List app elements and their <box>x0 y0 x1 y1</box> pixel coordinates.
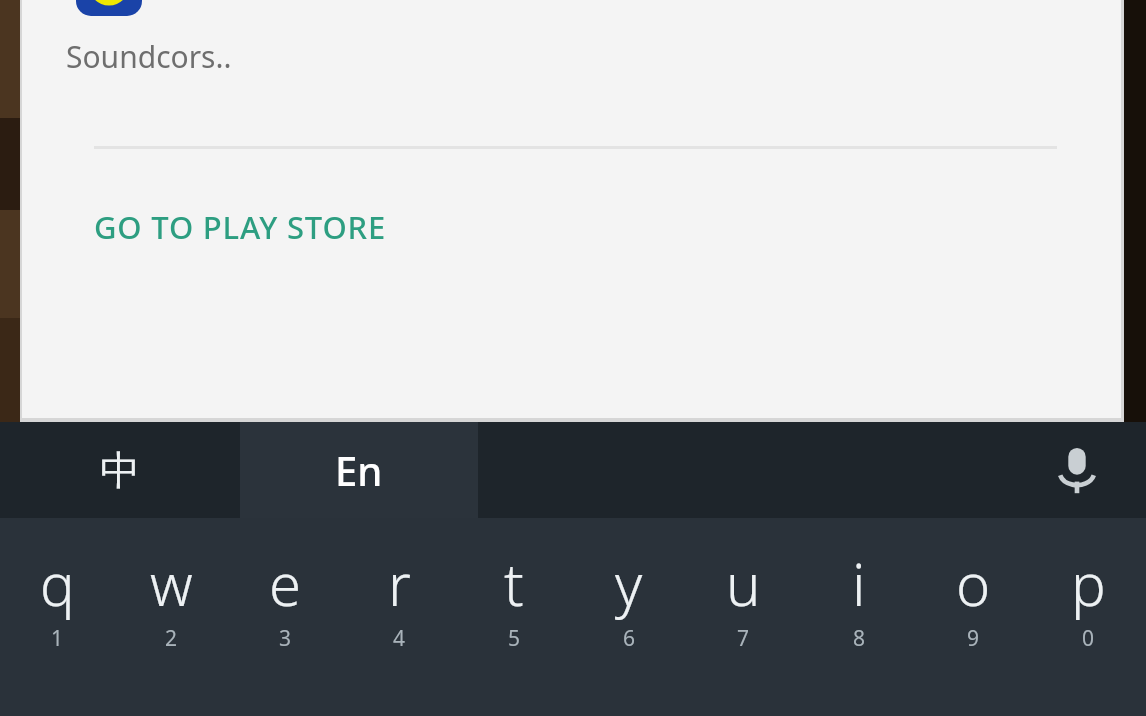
staticText: 5 <box>508 624 521 653</box>
staticText: 1 <box>51 624 64 653</box>
button[interactable]: Voice input <box>1048 441 1106 499</box>
staticText: 4 <box>393 624 406 653</box>
staticText: p <box>1071 544 1106 623</box>
staticText: w <box>150 544 193 623</box>
staticText: 2 <box>165 624 178 653</box>
staticText: En <box>335 443 383 497</box>
staticText: y <box>615 544 643 623</box>
button[interactable]: o <box>916 518 1031 716</box>
button[interactable]: GO TO PLAY STORE <box>78 192 402 262</box>
staticText: GO TO PLAY STORE <box>94 206 386 248</box>
button[interactable]: y <box>571 518 686 716</box>
staticText: 8 <box>853 624 866 653</box>
staticText: r <box>388 544 411 623</box>
staticText: 9 <box>967 624 980 653</box>
staticText: u <box>726 544 761 623</box>
button[interactable]: Soundcorset app icon <box>76 0 142 16</box>
button[interactable]: p <box>1031 518 1146 716</box>
staticText: e <box>269 544 302 623</box>
button[interactable]: t <box>456 518 571 716</box>
button[interactable]: q <box>0 518 114 716</box>
button[interactable]: e <box>228 518 342 716</box>
staticText: 3 <box>279 624 292 653</box>
button[interactable]: w <box>114 518 228 716</box>
staticText: 中 <box>100 445 140 495</box>
button[interactable]: r <box>342 518 456 716</box>
button[interactable]: u <box>686 518 801 716</box>
staticText: q <box>40 544 75 623</box>
staticText: t <box>504 544 524 623</box>
button[interactable]: Chinese input <box>0 422 240 518</box>
staticText: i <box>852 544 866 623</box>
staticText: o <box>956 544 991 623</box>
staticText: 7 <box>737 624 750 653</box>
staticText: 6 <box>623 624 636 653</box>
button[interactable]: i <box>801 518 916 716</box>
staticText: 0 <box>1082 624 1095 653</box>
staticText: Soundcors.. <box>66 36 232 77</box>
button[interactable]: En <box>240 422 478 518</box>
